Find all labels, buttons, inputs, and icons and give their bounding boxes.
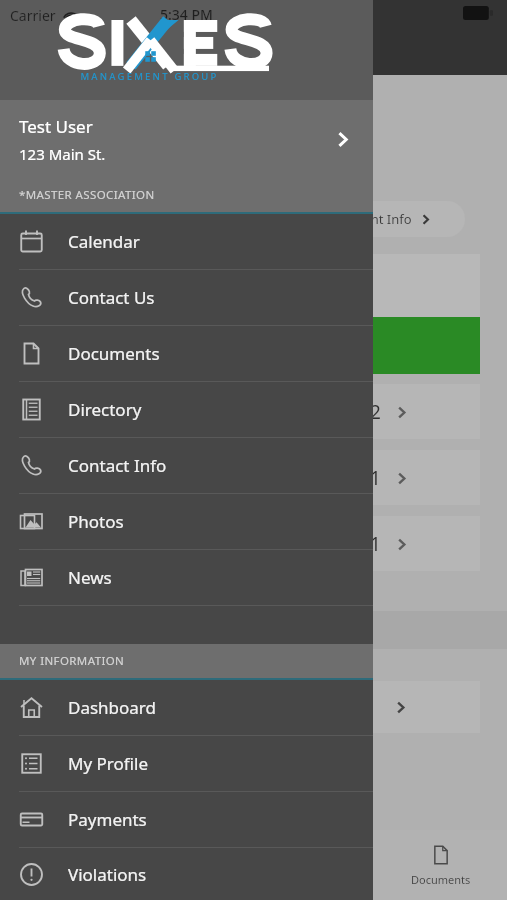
button[interactable]: Contact Us (0, 270, 373, 325)
button[interactable]: Contact Info (0, 438, 373, 493)
staticText: Dashboard (68, 696, 157, 719)
staticText: MY INFORMATION (19, 653, 125, 669)
staticText: Directory (68, 398, 142, 421)
button[interactable]: Test User (0, 100, 373, 178)
staticText: Calendar (68, 230, 140, 253)
button[interactable]: 2 (310, 384, 480, 439)
button[interactable] (310, 681, 480, 733)
staticText: 2 (370, 399, 381, 425)
button[interactable]: Documents (405, 838, 477, 893)
staticText: Account Info (334, 210, 412, 228)
button[interactable] (310, 317, 480, 374)
staticText: News (68, 566, 112, 589)
staticText: Documents (411, 872, 471, 887)
button[interactable]: Documents (0, 326, 373, 381)
button[interactable]: My Profile (0, 736, 373, 791)
button[interactable]: Dashboard (0, 680, 373, 735)
staticText: Contact Us (68, 286, 155, 309)
staticText: Documents (68, 342, 160, 365)
staticText: 123 Main St. (19, 144, 106, 164)
staticText: 5:34 PM (160, 5, 213, 24)
staticText: Photos (68, 510, 124, 533)
button[interactable]: News (0, 550, 373, 605)
button[interactable]: Calendar (0, 214, 373, 269)
button[interactable]: Photos (0, 494, 373, 549)
staticText: Carrier (10, 6, 56, 25)
button[interactable]: Violations (0, 848, 373, 900)
staticText: 1 (370, 531, 381, 557)
button[interactable]: Add Account (0, 75, 507, 182)
staticText: Violations (68, 863, 147, 886)
staticText: Payments (68, 808, 147, 831)
staticText: MANAGEMENT GROUP (80, 70, 219, 83)
staticText: Test User (19, 115, 93, 138)
button[interactable]: 1 (310, 450, 480, 505)
staticText: Contact Info (68, 454, 167, 477)
button[interactable]: 1 (310, 516, 480, 571)
button[interactable]: Account Info (300, 201, 465, 237)
staticText: My Profile (68, 752, 148, 775)
staticText: 1 (370, 465, 381, 491)
button[interactable]: Payments (0, 792, 373, 847)
staticText: *MASTER ASSOCIATION (19, 187, 155, 203)
button[interactable]: Directory (0, 382, 373, 437)
